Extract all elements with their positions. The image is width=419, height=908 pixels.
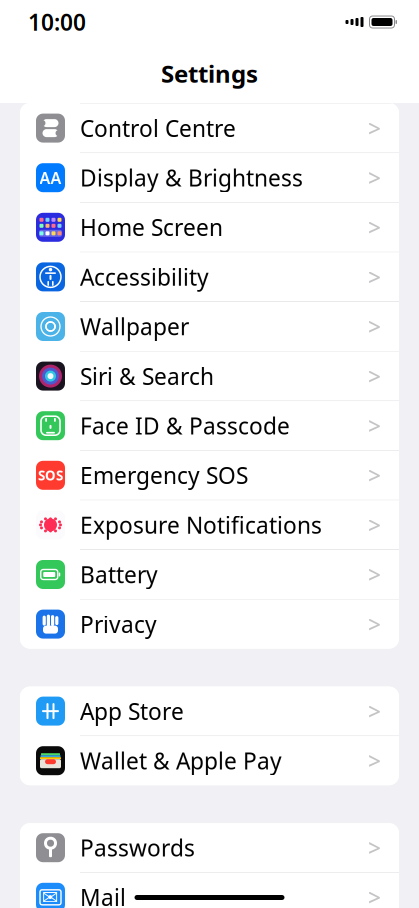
staticText: > [368,746,381,776]
staticText: > [368,696,381,726]
staticText: > [368,361,381,391]
staticText: Face ID & Passcode [80,411,290,441]
staticText: Wallpaper [80,311,189,341]
staticText: > [368,163,381,193]
staticText: > [368,609,381,639]
staticText: Control Centre [80,113,236,143]
staticText: Siri & Search [80,361,214,391]
staticText: App Store [80,696,184,726]
button[interactable]: Control Centre [20,104,399,153]
staticText: Settings [161,58,258,89]
button[interactable]: ✉ [20,873,399,908]
staticText: > [368,311,381,341]
button[interactable]: Siri & Search [20,352,399,401]
staticText: AA [39,167,61,188]
button[interactable]: Face ID & Passcode [20,401,399,451]
button[interactable]: Passwords [20,823,399,873]
button[interactable]: Privacy [20,600,399,649]
staticText: > [368,113,381,143]
staticText: > [368,510,381,540]
button[interactable]: App Store [20,687,399,736]
button[interactable]: Home Screen [20,203,399,252]
staticText: Privacy [80,609,157,639]
staticText: > [368,262,381,292]
staticText: 10:00 [28,7,86,37]
staticText: Wallet & Apple Pay [80,746,282,776]
staticText: Home Screen [80,212,223,242]
staticText: SOS [38,466,63,484]
staticText: Display & Brightness [80,163,303,193]
button[interactable]: Exposure Notifications [20,500,399,550]
staticText: > [368,559,381,589]
staticText: > [368,833,381,863]
staticText: Emergency SOS [80,460,248,490]
staticText: > [368,882,381,908]
staticText: Mail [80,882,126,908]
button[interactable]: Wallpaper [20,302,399,352]
staticText: Exposure Notifications [80,510,322,540]
staticText: Battery [80,559,158,589]
staticText: Passwords [80,833,195,863]
button[interactable]: AA [20,153,399,203]
staticText: > [368,460,381,490]
button[interactable]: Accessibility [20,252,399,302]
staticText: Accessibility [80,262,209,292]
staticText: > [368,212,381,242]
button[interactable]: Battery [20,550,399,600]
button[interactable]: SOS [20,451,399,500]
button[interactable]: Wallet & Apple Pay [20,736,399,785]
staticText: ✉ [42,886,59,908]
staticText: > [368,411,381,441]
